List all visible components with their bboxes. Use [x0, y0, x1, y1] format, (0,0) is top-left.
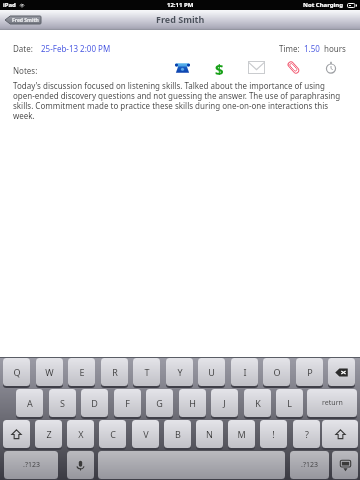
- button[interactable]: N: [196, 420, 223, 448]
- button[interactable]: I: [231, 358, 258, 386]
- button[interactable]: 25-Feb-13 2:00 PM: [41, 43, 111, 54]
- button[interactable]: Q: [3, 358, 30, 386]
- button[interactable]: Call: [174, 59, 191, 75]
- button[interactable]: H: [179, 389, 206, 417]
- staticText: !: [272, 428, 275, 440]
- staticText: M: [237, 428, 246, 440]
- staticText: A: [27, 397, 33, 409]
- staticText: H: [189, 397, 196, 409]
- button[interactable]: Shift: [322, 420, 358, 448]
- button[interactable]: Z: [35, 420, 62, 448]
- button[interactable]: Y: [166, 358, 193, 386]
- button[interactable]: R: [101, 358, 128, 386]
- staticText: .?123: [301, 460, 318, 470]
- staticText: B: [175, 428, 181, 440]
- button[interactable]: D: [81, 389, 108, 417]
- staticText: F: [125, 397, 130, 409]
- button[interactable]: T: [133, 358, 160, 386]
- staticText: ?: [305, 428, 309, 440]
- button[interactable]: .?123: [4, 451, 58, 479]
- staticText: O: [273, 366, 281, 378]
- button[interactable]: Attachment: [285, 59, 302, 75]
- button[interactable]: Backspace: [328, 358, 355, 386]
- staticText: hours: [324, 43, 346, 54]
- staticText: I: [243, 366, 247, 378]
- staticText: S: [60, 397, 65, 409]
- staticText: C: [110, 428, 116, 440]
- button[interactable]: A: [16, 389, 43, 417]
- button[interactable]: J: [211, 389, 238, 417]
- staticText: .?123: [23, 460, 40, 470]
- button[interactable]: O: [263, 358, 290, 386]
- button[interactable]: M: [228, 420, 255, 448]
- staticText: Fred Smith: [12, 17, 39, 24]
- button[interactable]: ?: [293, 420, 320, 448]
- staticText: E: [79, 366, 85, 378]
- staticText: Date:: [13, 43, 33, 54]
- staticText: K: [255, 397, 261, 409]
- staticText: Time:: [279, 43, 300, 54]
- button[interactable]: !: [260, 420, 287, 448]
- button[interactable]: C: [99, 420, 126, 448]
- button[interactable]: E: [68, 358, 95, 386]
- button[interactable]: X: [67, 420, 94, 448]
- button[interactable]: F: [114, 389, 141, 417]
- staticText: V: [143, 428, 149, 440]
- staticText: N: [206, 428, 213, 440]
- staticText: J: [223, 397, 226, 409]
- button[interactable]: L: [276, 389, 303, 417]
- button[interactable]: U: [198, 358, 225, 386]
- staticText: return: [322, 398, 343, 408]
- button[interactable]: Hide keyboard: [332, 451, 358, 479]
- button[interactable]: Space: [98, 451, 285, 479]
- button[interactable]: Billing: [211, 59, 228, 75]
- button[interactable]: G: [146, 389, 173, 417]
- staticText: T: [144, 366, 150, 378]
- button[interactable]: .?123: [290, 451, 329, 479]
- button[interactable]: Shift: [3, 420, 30, 448]
- button[interactable]: Back to Fred Smith: [5, 15, 41, 25]
- button[interactable]: S: [49, 389, 76, 417]
- staticText: Fred Smith: [156, 13, 205, 25]
- staticText: iPad: [3, 1, 16, 9]
- staticText: X: [78, 428, 84, 440]
- staticText: $: [215, 59, 224, 75]
- button[interactable]: History: [322, 59, 339, 75]
- staticText: U: [208, 366, 215, 378]
- button[interactable]: W: [36, 358, 63, 386]
- staticText: G: [156, 397, 163, 409]
- button[interactable]: K: [244, 389, 271, 417]
- staticText: Y: [177, 366, 183, 378]
- staticText: 12:11 PM: [167, 1, 194, 9]
- button[interactable]: Email: [248, 59, 265, 75]
- button[interactable]: V: [132, 420, 159, 448]
- staticText: Not Charging: [303, 1, 344, 9]
- button[interactable]: 1.50: [304, 43, 320, 54]
- staticText: Q: [13, 366, 21, 378]
- staticText: W: [45, 366, 54, 378]
- staticText: D: [91, 397, 98, 409]
- staticText: Notes:: [13, 65, 38, 76]
- staticText: Today's discussion focused on listening …: [13, 80, 343, 121]
- button[interactable]: P: [296, 358, 323, 386]
- button[interactable]: return: [307, 389, 357, 417]
- staticText: P: [307, 366, 313, 378]
- staticText: R: [112, 366, 118, 378]
- button[interactable]: B: [164, 420, 191, 448]
- button[interactable]: Dictation: [67, 451, 94, 479]
- staticText: Z: [46, 428, 52, 440]
- staticText: L: [287, 397, 292, 409]
